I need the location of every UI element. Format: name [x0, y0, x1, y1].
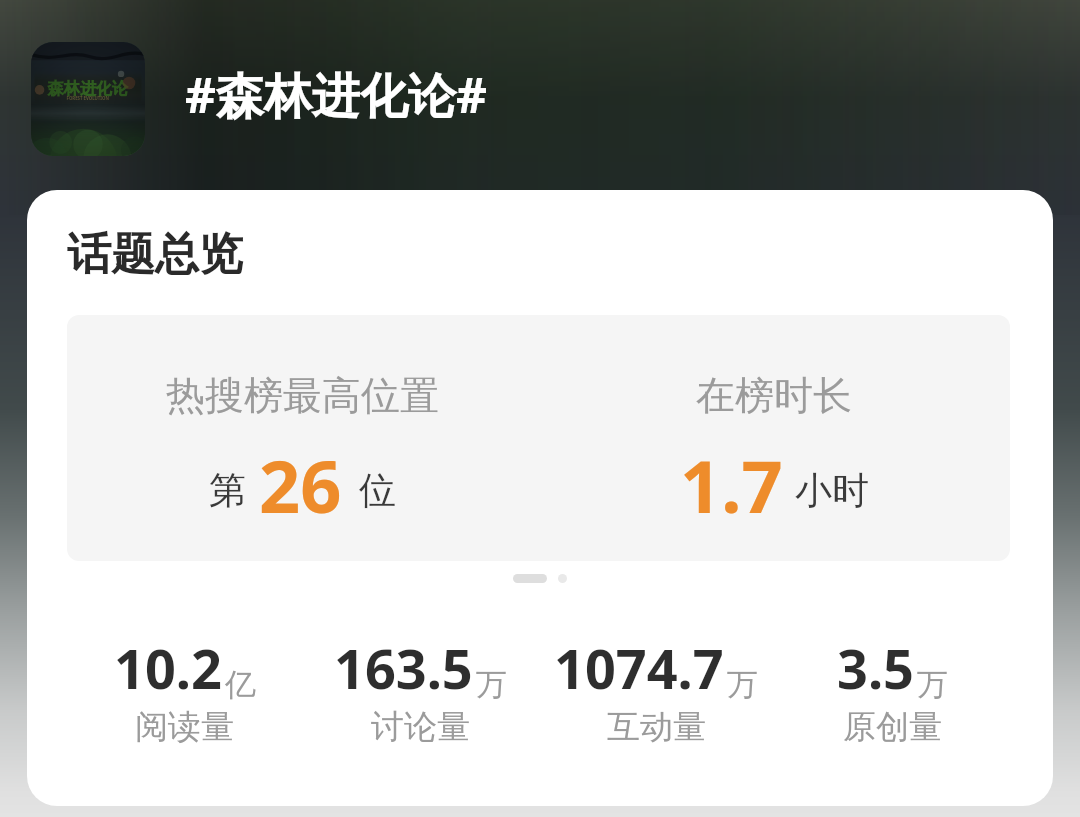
staticText: 原创量 [843, 706, 942, 748]
staticText: 万 [727, 665, 758, 704]
button[interactable]: Page indicator [513, 574, 567, 583]
staticText: 讨论量 [371, 706, 470, 748]
staticText: 第 [209, 467, 246, 514]
staticText: 163.5 [334, 631, 473, 705]
staticText: 在榜时长 [696, 371, 852, 420]
button[interactable]: 10.2 [67, 631, 302, 748]
button[interactable]: Topic cover image [31, 42, 145, 156]
button[interactable]: 163.5 [302, 631, 538, 748]
button[interactable]: 1074.7 [538, 631, 774, 748]
staticText: 热搜榜最高位置 [166, 371, 439, 420]
staticText: 亿 [225, 665, 256, 704]
staticText: 阅读量 [135, 706, 234, 748]
button[interactable]: 在榜时长 [538, 315, 1010, 561]
staticText: 万 [476, 665, 507, 704]
staticText: 3.5 [837, 631, 914, 705]
button[interactable]: 3.5 [774, 631, 1010, 748]
staticText: 万 [917, 665, 948, 704]
staticText: 10.2 [114, 631, 222, 705]
staticText: #森林进化论# [185, 62, 488, 128]
staticText: 话题总览 [67, 227, 243, 282]
staticText: 互动量 [607, 706, 706, 748]
staticText: 小时 [795, 467, 869, 514]
button[interactable]: 热搜榜最高位置 [67, 315, 538, 561]
staticText: 1074.7 [554, 631, 724, 705]
staticText: 位 [359, 467, 396, 514]
button[interactable]: Topic cover image [0, 0, 1080, 190]
staticText: 26 [259, 436, 342, 534]
staticText: 1.7 [680, 436, 783, 534]
